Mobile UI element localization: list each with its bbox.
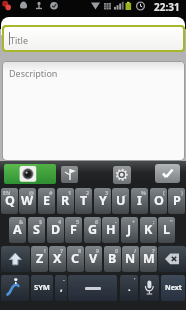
- button[interactable]: K: [140, 217, 157, 243]
- staticText: Y: [99, 192, 107, 209]
- button[interactable]: L: [158, 217, 175, 243]
- button[interactable]: J: [121, 217, 138, 243]
- staticText: ?: [152, 247, 155, 254]
- button[interactable]: [158, 246, 186, 272]
- button[interactable]: W: [19, 188, 36, 214]
- staticText: -: [115, 218, 117, 225]
- staticText: I: [137, 192, 142, 209]
- staticText: 1: [68, 189, 72, 196]
- button[interactable]: [68, 275, 117, 301]
- staticText: ;: [153, 218, 155, 225]
- button[interactable]: Y: [94, 188, 111, 214]
- staticText: X: [53, 250, 62, 267]
- staticText: Z: [36, 250, 44, 267]
- button[interactable]: O: [150, 188, 167, 214]
- staticText: O: [154, 192, 164, 209]
- button[interactable]: H: [102, 217, 119, 243]
- staticText: &: [19, 218, 24, 225]
- staticText: ): [181, 189, 183, 196]
- button[interactable]: G: [84, 217, 101, 243]
- button[interactable]: P: [168, 188, 185, 214]
- button[interactable]: ,: [55, 275, 67, 301]
- button[interactable]: R: [57, 188, 74, 214]
- staticText: @: [29, 189, 34, 196]
- staticText: -: [63, 276, 65, 283]
- staticText: B: [108, 250, 117, 267]
- button[interactable]: .: [120, 275, 138, 301]
- staticText: 5: [76, 218, 80, 225]
- staticText: 7: [60, 247, 64, 254]
- staticText: !: [44, 247, 46, 254]
- button[interactable]: E: [38, 188, 55, 214]
- button[interactable]: [1, 246, 30, 272]
- staticText: V: [89, 250, 98, 267]
- button[interactable]: Next: [161, 275, 185, 301]
- button[interactable]: S: [28, 217, 45, 243]
- staticText: SYM: [34, 282, 50, 292]
- button[interactable]: Description: [2, 61, 185, 161]
- staticText: P: [173, 192, 181, 209]
- staticText: F: [70, 221, 77, 238]
- staticText: U: [116, 192, 126, 209]
- staticText: W: [21, 192, 34, 209]
- button[interactable]: V: [85, 246, 102, 272]
- button[interactable]: B: [104, 246, 121, 272]
- staticText: 3: [105, 189, 109, 196]
- staticText: K: [144, 221, 153, 238]
- staticText: Next: [165, 283, 182, 293]
- staticText: $: [39, 218, 43, 225]
- staticText: ,: [60, 281, 63, 294]
- button[interactable]: SYM: [31, 275, 53, 301]
- staticText: .: [128, 281, 131, 294]
- button[interactable]: Z: [31, 246, 48, 272]
- staticText: H: [106, 221, 116, 238]
- staticText: Title: [10, 34, 28, 46]
- button[interactable]: [61, 166, 78, 183]
- staticText: N: [125, 250, 136, 267]
- staticText: C: [71, 250, 80, 267]
- button[interactable]: I: [131, 188, 148, 214]
- staticText: /: [134, 247, 137, 254]
- staticText: D: [51, 221, 61, 238]
- staticText: 4: [58, 218, 62, 225]
- staticText: A: [13, 221, 22, 238]
- staticText: R: [61, 192, 70, 209]
- button[interactable]: C: [67, 246, 84, 272]
- staticText: ': [134, 276, 136, 283]
- button[interactable]: D: [47, 217, 64, 243]
- button[interactable]: A: [9, 217, 26, 243]
- button[interactable]: F: [65, 217, 82, 243]
- button[interactable]: Title: [2, 25, 185, 52]
- staticText: E: [43, 192, 51, 209]
- staticText: T: [80, 192, 88, 209]
- button[interactable]: X: [49, 246, 66, 272]
- button[interactable]: [113, 166, 131, 184]
- staticText: 9: [96, 247, 100, 254]
- staticText: EN: [3, 189, 11, 196]
- staticText: (: [163, 189, 165, 196]
- staticText: M: [143, 250, 155, 267]
- staticText: J: [127, 221, 132, 238]
- button[interactable]: Q: [1, 188, 18, 214]
- button[interactable]: M: [140, 246, 157, 272]
- staticText: S: [33, 221, 40, 238]
- staticText: 22:31: [154, 0, 180, 14]
- staticText: 0: [115, 247, 119, 254]
- button[interactable]: N: [122, 246, 139, 272]
- staticText: Q: [5, 192, 15, 209]
- staticText: G: [88, 221, 98, 238]
- button[interactable]: [140, 275, 159, 301]
- button[interactable]: [155, 164, 180, 183]
- staticText: #: [49, 189, 53, 196]
- button[interactable]: [1, 275, 29, 301]
- staticText: %: [141, 189, 146, 196]
- staticText: L: [163, 221, 170, 238]
- staticText: _: [124, 189, 127, 196]
- button[interactable]: T: [75, 188, 92, 214]
- staticText: 8: [78, 247, 82, 254]
- staticText: Description: [9, 67, 58, 79]
- button[interactable]: U: [112, 188, 129, 214]
- staticText: ": [170, 218, 173, 225]
- staticText: +: [132, 218, 136, 225]
- button[interactable]: [4, 164, 56, 184]
